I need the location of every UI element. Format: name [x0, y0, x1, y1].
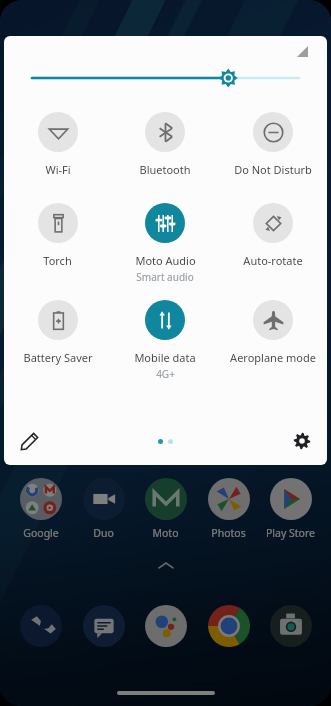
button[interactable]: Edit tiles	[12, 424, 46, 458]
staticText: Bluetooth	[139, 162, 191, 177]
button[interactable]	[75, 605, 132, 647]
button[interactable]: Mobile data	[111, 300, 219, 381]
staticText: Moto	[152, 526, 179, 540]
staticText: 4G+	[156, 367, 175, 381]
button[interactable]: Auto-rotate	[219, 203, 327, 268]
button[interactable]: Aeroplane mode	[219, 300, 327, 365]
button[interactable]	[12, 605, 69, 647]
staticText: Google	[23, 526, 59, 540]
button[interactable]: Torch	[4, 203, 111, 268]
button[interactable]: Photos	[200, 478, 257, 540]
button[interactable]: Duo	[75, 478, 132, 540]
button[interactable]	[200, 605, 257, 647]
staticText: Torch	[43, 253, 72, 268]
staticText: Do Not Disturb	[234, 162, 312, 177]
staticText: Play Store	[266, 526, 315, 540]
button[interactable]	[137, 605, 194, 647]
button[interactable]: Settings	[285, 424, 319, 458]
staticText: Battery Saver	[23, 350, 93, 365]
staticText: Auto-rotate	[243, 253, 303, 268]
staticText: Mobile data	[134, 350, 196, 365]
button[interactable]: Battery Saver	[4, 300, 111, 365]
button[interactable]: Brightness	[32, 66, 299, 90]
staticText: Wi-Fi	[45, 162, 71, 177]
staticText: Moto Audio	[135, 253, 196, 268]
button[interactable]: Play Store	[262, 478, 319, 540]
button[interactable]: Moto	[137, 478, 194, 540]
button[interactable]	[262, 605, 319, 647]
staticText: Photos	[211, 526, 246, 540]
button[interactable]: Moto Audio	[111, 203, 219, 284]
button[interactable]: Wi-Fi	[4, 112, 111, 177]
staticText: Aeroplane mode	[230, 350, 316, 365]
button[interactable]: Bluetooth	[111, 112, 219, 177]
staticText: Smart audio	[136, 270, 194, 284]
staticText: Duo	[93, 526, 114, 540]
button[interactable]: Google	[12, 478, 69, 540]
button[interactable]: Do Not Disturb	[219, 112, 327, 177]
button[interactable]: Collapse	[291, 40, 313, 62]
